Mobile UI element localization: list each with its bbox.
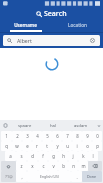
- button[interactable]: g: [48, 151, 58, 161]
- button[interactable]: w: [12, 141, 22, 151]
- button[interactable]: p: [92, 141, 102, 151]
- staticText: c: [42, 163, 45, 169]
- staticText: Done: [87, 174, 97, 179]
- button[interactable]: 2: [12, 131, 22, 141]
- staticText: 3: [26, 133, 29, 139]
- staticText: w: [15, 143, 19, 149]
- staticText: p: [96, 143, 99, 149]
- button[interactable]: f: [38, 151, 48, 161]
- button[interactable]: More suggestions: [95, 120, 103, 131]
- button[interactable]: r: [32, 141, 42, 151]
- staticText: b: [62, 163, 65, 169]
- staticText: Location: [68, 22, 87, 28]
- staticText: 1: [5, 133, 8, 139]
- button[interactable]: v: [48, 161, 58, 171]
- staticText: h: [62, 153, 65, 159]
- button[interactable]: 3: [22, 131, 32, 141]
- staticText: hal: [50, 123, 57, 129]
- button[interactable]: a: [5, 151, 16, 161]
- button[interactable]: j: [68, 151, 78, 161]
- button[interactable]: 6: [52, 131, 62, 141]
- button[interactable]: q: [1, 141, 12, 151]
- button[interactable]: Backspace: [88, 161, 102, 171]
- staticText: 6: [56, 133, 59, 139]
- button[interactable]: Location: [51, 20, 103, 30]
- staticText: z: [20, 163, 23, 169]
- staticText: 8: [76, 133, 79, 139]
- staticText: i: [76, 143, 78, 149]
- staticText: x: [31, 163, 34, 169]
- button[interactable]: 1: [1, 131, 12, 141]
- staticText: a: [9, 153, 12, 159]
- button[interactable]: n: [68, 161, 78, 171]
- button[interactable]: d: [27, 151, 38, 161]
- button[interactable]: m: [78, 161, 88, 171]
- button[interactable]: s: [16, 151, 27, 161]
- button[interactable]: e: [22, 141, 32, 151]
- button[interactable]: i: [72, 141, 82, 151]
- staticText: f: [42, 153, 44, 159]
- button[interactable]: English (US): [27, 171, 71, 182]
- button[interactable]: 0: [92, 131, 102, 141]
- staticText: English (US): [40, 174, 59, 179]
- staticText: Username: [14, 22, 37, 28]
- button[interactable]: ,: [16, 171, 27, 182]
- button[interactable]: Voice input: [0, 120, 11, 131]
- staticText: g: [52, 153, 55, 159]
- button[interactable]: x: [27, 161, 38, 171]
- staticText: y: [56, 143, 59, 149]
- button[interactable]: u: [62, 141, 72, 151]
- button[interactable]: Shift: [1, 161, 16, 171]
- staticText: ,: [21, 174, 23, 180]
- button[interactable]: Done: [82, 171, 102, 182]
- staticText: s: [20, 153, 23, 159]
- button[interactable]: asdam: [67, 120, 95, 131]
- staticText: k: [82, 153, 85, 159]
- staticText: n: [72, 163, 75, 169]
- staticText: t: [46, 143, 48, 149]
- staticText: u: [66, 143, 69, 149]
- button[interactable]: Albert: [3, 35, 100, 46]
- button[interactable]: b: [58, 161, 68, 171]
- staticText: d: [31, 153, 34, 159]
- button[interactable]: t: [42, 141, 52, 151]
- staticText: 5: [46, 133, 49, 139]
- button[interactable]: 8: [72, 131, 82, 141]
- button[interactable]: 5: [42, 131, 52, 141]
- staticText: ?1☺: [5, 174, 13, 179]
- button[interactable]: h: [58, 151, 68, 161]
- staticText: asdam: [74, 123, 88, 129]
- button[interactable]: z: [16, 161, 27, 171]
- button[interactable]: k: [78, 151, 88, 161]
- staticText: Albert: [17, 37, 32, 44]
- staticText: e: [26, 143, 29, 149]
- staticText: l: [92, 153, 94, 159]
- button[interactable]: Username: [0, 20, 51, 30]
- button[interactable]: y: [52, 141, 62, 151]
- button[interactable]: 7: [62, 131, 72, 141]
- button[interactable]: hal: [39, 120, 67, 131]
- button[interactable]: 4: [32, 131, 42, 141]
- button[interactable]: .: [71, 171, 82, 182]
- staticText: j: [72, 153, 74, 159]
- staticText: 9: [86, 133, 89, 139]
- button[interactable]: ?1☺: [1, 171, 16, 182]
- button[interactable]: c: [38, 161, 48, 171]
- button[interactable]: Clear search: [89, 37, 96, 44]
- staticText: Search: [44, 9, 67, 19]
- staticText: 0: [96, 133, 99, 139]
- button[interactable]: l: [88, 151, 98, 161]
- staticText: 4: [36, 133, 39, 139]
- button[interactable]: 9: [82, 131, 92, 141]
- staticText: 2: [16, 133, 19, 139]
- staticText: 7: [66, 133, 69, 139]
- staticText: spaare: [18, 123, 32, 129]
- staticText: o: [86, 143, 89, 149]
- staticText: .: [76, 174, 78, 180]
- button[interactable]: spaare: [11, 120, 39, 131]
- button[interactable]: o: [82, 141, 92, 151]
- staticText: r: [36, 143, 38, 149]
- staticText: q: [5, 143, 8, 149]
- staticText: m: [81, 163, 86, 169]
- staticText: v: [52, 163, 55, 169]
